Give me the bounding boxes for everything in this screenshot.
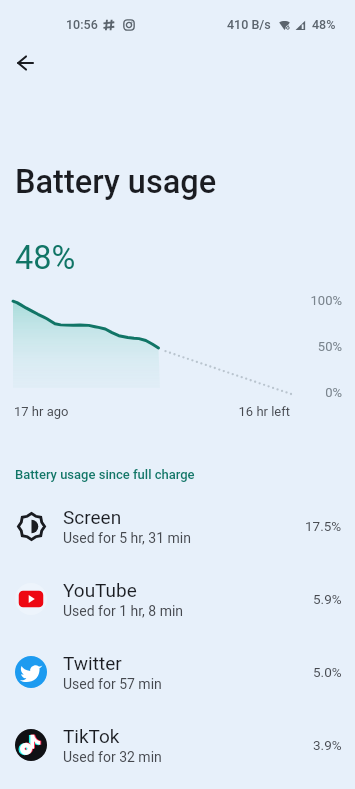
staticText: 17 hr ago	[14, 404, 69, 419]
staticText: Twitter	[63, 652, 122, 674]
staticText: 410 B/s	[227, 17, 271, 32]
staticText: Used for 57 min	[63, 676, 162, 692]
staticText: 50%	[0, 339, 342, 354]
staticText: 100%	[0, 293, 342, 308]
button[interactable]: Screen	[0, 489, 355, 562]
staticText: Screen	[63, 506, 122, 528]
staticText: Used for 1 hr, 8 min	[63, 603, 184, 619]
button[interactable]: TikTok	[0, 708, 355, 781]
staticText: 17.5%	[305, 518, 342, 534]
staticText: Used for 32 min	[63, 749, 162, 765]
staticText: 16 hr left	[0, 404, 290, 419]
button[interactable]: Back	[5, 43, 45, 83]
button[interactable]: Twitter	[0, 635, 355, 708]
staticText: Battery usage	[15, 163, 217, 201]
staticText: 48%	[15, 239, 76, 277]
staticText: 5.0%	[313, 664, 342, 680]
staticText: YouTube	[63, 579, 137, 601]
button[interactable]: YouTube	[0, 562, 355, 635]
staticText: 5.9%	[313, 591, 342, 607]
staticText: 0%	[0, 385, 342, 400]
staticText: Used for 5 hr, 31 min	[63, 530, 191, 546]
staticText: 48%	[312, 17, 336, 32]
staticText: 10:56	[66, 17, 98, 32]
staticText: Battery usage since full charge	[15, 467, 195, 482]
staticText: 3.9%	[313, 737, 342, 753]
staticText: TikTok	[63, 725, 120, 747]
